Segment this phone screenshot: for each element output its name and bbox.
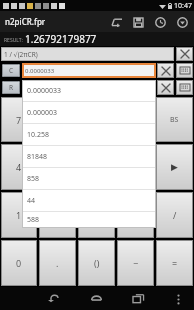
button[interactable]: 858 bbox=[22, 168, 156, 189]
staticText: 1 bbox=[16, 209, 22, 221]
staticText: 3 bbox=[94, 209, 100, 221]
staticText: 81848 bbox=[27, 152, 48, 162]
staticText: − bbox=[133, 257, 139, 269]
staticText: 4 bbox=[16, 161, 22, 173]
button[interactable]: C bbox=[2, 64, 20, 77]
button[interactable]: 3 bbox=[78, 192, 115, 238]
button[interactable]: 0.000003 bbox=[22, 102, 156, 123]
button[interactable]: ◀ bbox=[117, 144, 154, 190]
button[interactable]: 4 bbox=[1, 144, 37, 190]
staticText: 7 bbox=[16, 114, 22, 126]
button[interactable]: 10.258 bbox=[22, 124, 156, 145]
button[interactable]: () bbox=[78, 240, 115, 286]
button[interactable]: ▶ bbox=[156, 144, 193, 190]
button[interactable]: BS bbox=[156, 97, 193, 142]
staticText: 8 bbox=[55, 114, 61, 126]
staticText: RESULT: bbox=[4, 37, 23, 44]
staticText: 0.0000033 bbox=[27, 86, 61, 96]
button[interactable]: 8 bbox=[39, 97, 76, 142]
button[interactable]: 81848 bbox=[22, 146, 156, 167]
button[interactable]: 7 bbox=[1, 97, 37, 142]
staticText: ▶ bbox=[171, 162, 178, 172]
staticText: * bbox=[133, 114, 138, 126]
staticText: C bbox=[9, 66, 14, 75]
staticText: 0 bbox=[16, 257, 22, 269]
staticText: . bbox=[56, 257, 59, 269]
button[interactable]: History bbox=[153, 15, 167, 29]
button[interactable]: 588 bbox=[22, 212, 156, 228]
staticText: n2piCR.fpr bbox=[5, 16, 46, 27]
button[interactable]: 0.0000033 bbox=[22, 80, 156, 101]
button[interactable]: Recents bbox=[126, 287, 150, 310]
button[interactable]: 44 bbox=[22, 190, 156, 211]
staticText: 1 / √(2πCR) bbox=[4, 50, 38, 59]
button[interactable]: / bbox=[156, 192, 193, 238]
staticText: 2 bbox=[55, 209, 61, 221]
staticText: R bbox=[9, 83, 14, 92]
button[interactable]: * bbox=[117, 97, 154, 142]
staticText: () bbox=[94, 257, 100, 269]
staticText: 588 bbox=[27, 215, 40, 225]
staticText: BS bbox=[170, 115, 179, 125]
button[interactable]: − bbox=[117, 240, 154, 286]
button[interactable]: 0 bbox=[1, 240, 37, 286]
staticText: 9 bbox=[94, 114, 100, 126]
staticText: 858 bbox=[27, 174, 40, 184]
staticText: / bbox=[173, 209, 177, 221]
staticText: 0.0000033 bbox=[25, 67, 55, 75]
staticText: 44 bbox=[27, 196, 36, 206]
button[interactable]: Clear bbox=[157, 80, 174, 95]
staticText: 1.26792179877 bbox=[25, 32, 97, 45]
button[interactable]: = bbox=[156, 240, 193, 286]
staticText: 0.000003 bbox=[27, 108, 57, 118]
button[interactable]: Menu bbox=[168, 289, 188, 309]
button[interactable]: Home bbox=[84, 287, 108, 310]
button[interactable]: Clear bbox=[157, 63, 174, 78]
button[interactable]: 1 / √(2πCR) bbox=[1, 47, 174, 61]
button[interactable]: 9 bbox=[78, 97, 115, 142]
button[interactable]: Back bbox=[42, 287, 66, 310]
staticText: = bbox=[172, 257, 178, 269]
button[interactable]: 6 bbox=[78, 144, 115, 190]
staticText: 5 bbox=[55, 161, 61, 173]
button[interactable]: More options bbox=[175, 15, 189, 29]
button[interactable]: 0.0000033 bbox=[22, 80, 156, 95]
button[interactable]: Transform bbox=[109, 15, 123, 29]
button[interactable]: 0.0000033 bbox=[22, 63, 156, 78]
button[interactable]: R bbox=[2, 81, 20, 94]
button[interactable]: 1 bbox=[1, 192, 37, 238]
button[interactable]: + bbox=[117, 192, 154, 238]
button[interactable]: Save bbox=[131, 15, 145, 29]
staticText: 10.258 bbox=[27, 130, 49, 140]
button[interactable]: Keyboard bbox=[176, 63, 193, 78]
staticText: 0.0000033 bbox=[25, 84, 55, 92]
staticText: 6 bbox=[94, 161, 100, 173]
button[interactable]: Keyboard bbox=[176, 80, 193, 95]
staticText: + bbox=[133, 209, 139, 221]
button[interactable]: 2 bbox=[39, 192, 76, 238]
staticText: ◀ bbox=[132, 162, 139, 172]
button[interactable]: . bbox=[39, 240, 76, 286]
button[interactable]: 5 bbox=[39, 144, 76, 190]
staticText: 10:47 bbox=[174, 1, 192, 11]
button[interactable]: Clear bbox=[176, 47, 193, 61]
